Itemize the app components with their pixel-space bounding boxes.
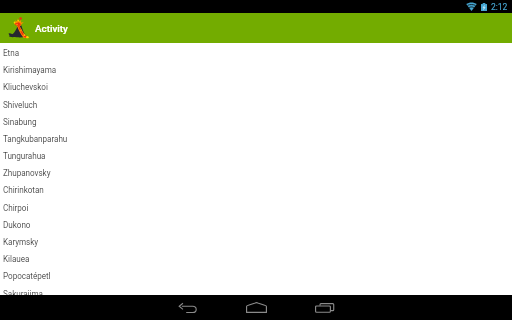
button[interactable]: Kliuchevskoi: [0, 78, 512, 95]
staticText: Tangkubanparahu: [3, 134, 68, 144]
button[interactable]: Tungurahua: [0, 147, 512, 164]
button[interactable]: Chirpoi: [0, 199, 512, 216]
staticText: Kirishimayama: [3, 65, 57, 75]
staticText: Dukono: [3, 220, 31, 230]
other: Volcano app icon: [9, 17, 29, 38]
button[interactable]: Shiveluch: [0, 96, 512, 113]
button[interactable]: Back: [171, 295, 205, 320]
button[interactable]: Etna: [0, 44, 512, 61]
staticText: Popocatépetl: [3, 271, 51, 281]
button[interactable]: Popocatépetl: [0, 267, 512, 284]
staticText: Shiveluch: [3, 100, 38, 110]
button[interactable]: Kilauea: [0, 250, 512, 267]
button[interactable]: Kirishimayama: [0, 61, 512, 78]
button[interactable]: Sakurajima: [0, 285, 512, 302]
staticText: Kilauea: [3, 254, 30, 264]
button[interactable]: Volcano app icon: [0, 13, 74, 43]
button[interactable]: Tangkubanparahu: [0, 130, 512, 147]
button[interactable]: Chirinkotan: [0, 181, 512, 198]
staticText: Tungurahua: [3, 151, 46, 161]
button[interactable]: Home: [239, 295, 273, 320]
staticText: Zhupanovsky: [3, 168, 51, 178]
staticText: Karymsky: [3, 237, 39, 247]
staticText: 2:12: [491, 2, 508, 12]
button[interactable]: Karymsky: [0, 233, 512, 250]
staticText: Chirinkotan: [3, 185, 44, 195]
staticText: Activity: [35, 23, 68, 34]
staticText: Sinabung: [3, 117, 37, 127]
staticText: Kliuchevskoi: [3, 82, 48, 92]
button[interactable]: Semeru: [0, 302, 512, 319]
button[interactable]: Zhupanovsky: [0, 164, 512, 181]
staticText: Etna: [3, 48, 20, 58]
staticText: Sakurajima: [3, 289, 43, 299]
button[interactable]: Sinabung: [0, 113, 512, 130]
button[interactable]: Recent apps: [307, 295, 341, 320]
button[interactable]: Dukono: [0, 216, 512, 233]
staticText: Chirpoi: [3, 203, 29, 213]
